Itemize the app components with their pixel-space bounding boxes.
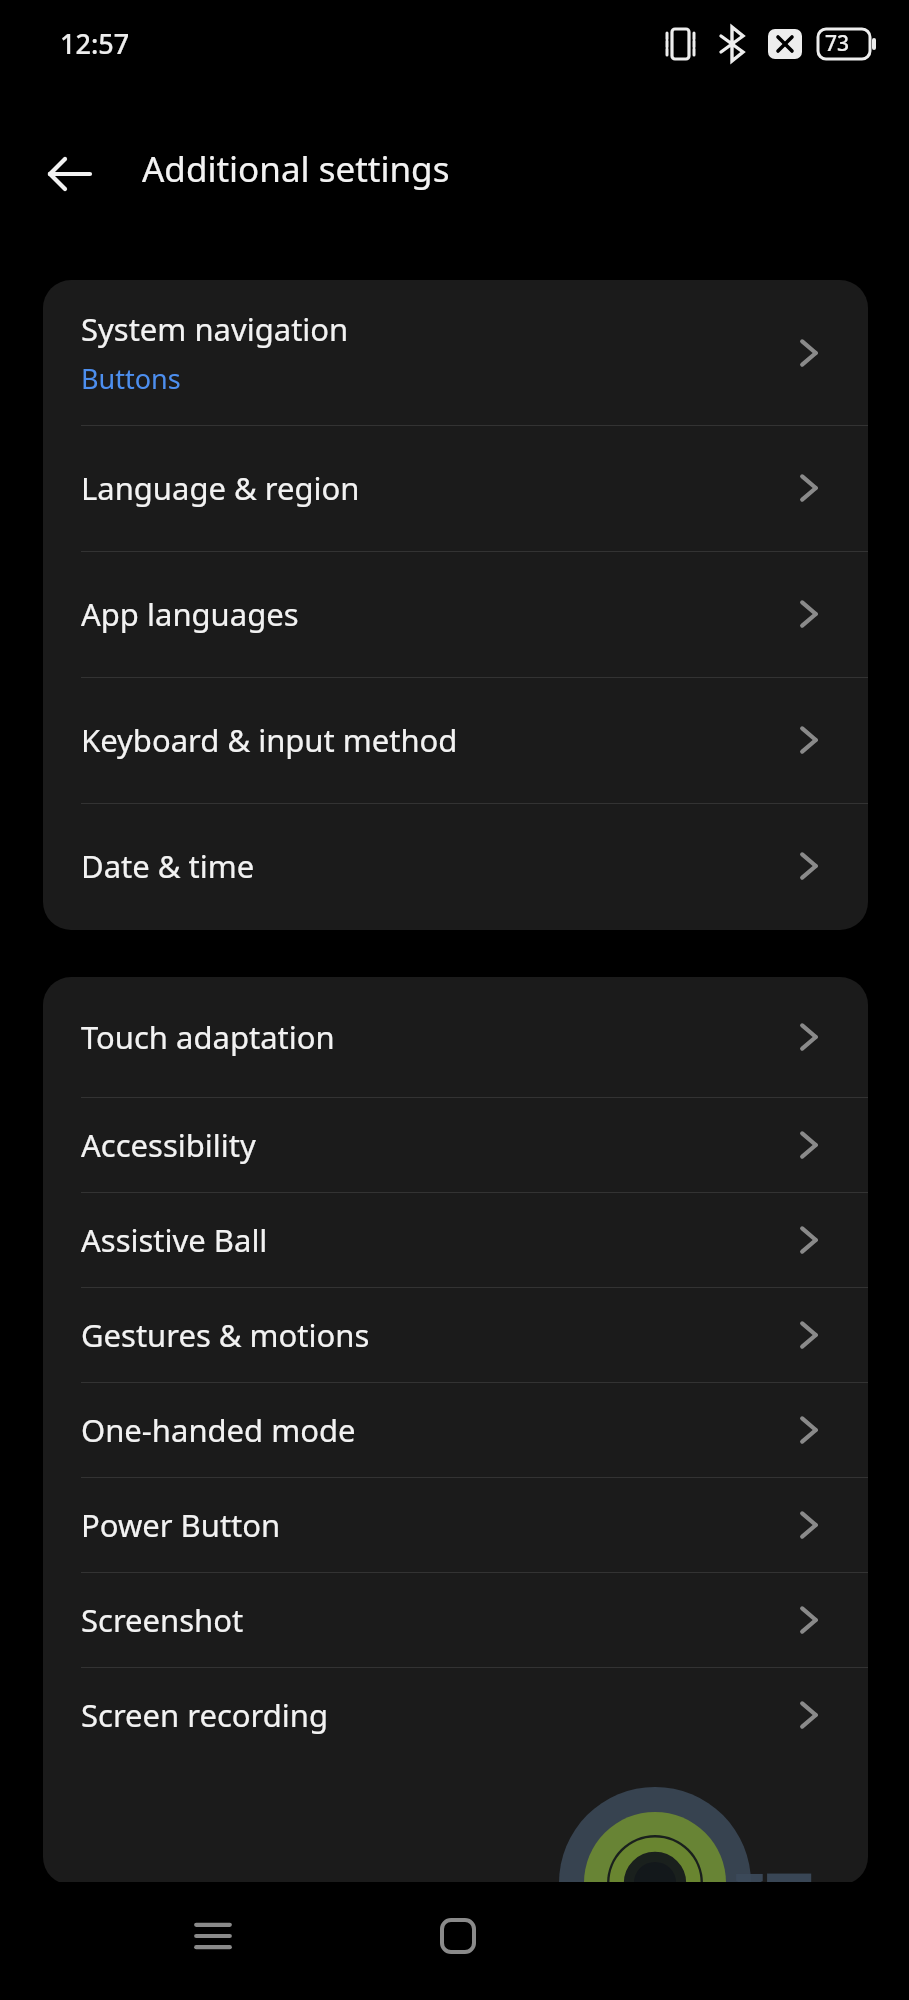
button[interactable]: Language & region xyxy=(43,425,868,551)
button[interactable]: Screen recording xyxy=(43,1667,868,1762)
staticText: Screen recording xyxy=(81,1694,329,1736)
staticText: Buttons xyxy=(81,360,181,397)
staticText: 12:57 xyxy=(60,25,130,62)
staticText: System navigation xyxy=(81,308,349,350)
button[interactable]: Date & time xyxy=(43,803,868,929)
staticText: App languages xyxy=(81,593,299,635)
staticText: Power Button xyxy=(81,1504,281,1546)
button[interactable]: System navigation xyxy=(43,280,868,425)
staticText: Language & region xyxy=(81,467,360,509)
button[interactable]: Home xyxy=(420,1898,496,1974)
staticText: Touch adaptation xyxy=(81,1016,335,1058)
button[interactable]: Gestures & motions xyxy=(43,1287,868,1382)
button[interactable]: Accessibility xyxy=(43,1097,868,1192)
staticText: Keyboard & input method xyxy=(81,719,458,761)
staticText: Additional settings xyxy=(142,145,450,193)
button[interactable]: Screenshot xyxy=(43,1572,868,1667)
staticText: Date & time xyxy=(81,845,255,887)
staticText: One-handed mode xyxy=(81,1409,356,1451)
staticText: arenaIT xyxy=(498,1845,813,1957)
button[interactable]: Back xyxy=(28,132,112,216)
button[interactable]: Assistive Ball xyxy=(43,1192,868,1287)
button[interactable]: App languages xyxy=(43,551,868,677)
staticText: Screenshot xyxy=(81,1599,244,1641)
staticText: 73 xyxy=(825,29,850,58)
button[interactable]: One-handed mode xyxy=(43,1382,868,1477)
staticText: Accessibility xyxy=(81,1124,256,1166)
staticText: Assistive Ball xyxy=(81,1219,268,1261)
button[interactable]: Keyboard & input method xyxy=(43,677,868,803)
button[interactable]: Power Button xyxy=(43,1477,868,1572)
staticText: Gestures & motions xyxy=(81,1314,370,1356)
button[interactable]: Touch adaptation xyxy=(43,977,868,1097)
button[interactable]: Recent apps xyxy=(175,1898,251,1974)
